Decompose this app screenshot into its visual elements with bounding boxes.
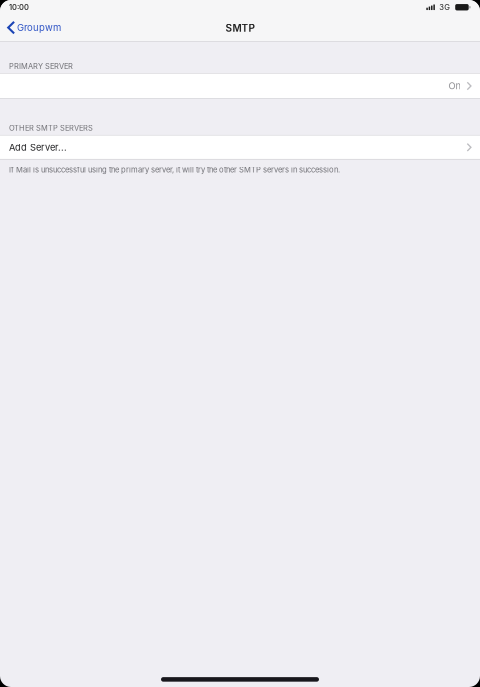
staticText: If Mail is unsuccessful using the primar…	[9, 165, 340, 174]
staticText: 10:00	[9, 3, 29, 12]
staticText: Add Server...	[9, 142, 67, 153]
button[interactable]: Add Server...	[0, 136, 480, 159]
button[interactable]: On	[0, 74, 480, 98]
staticText: OTHER SMTP SERVERS	[9, 123, 93, 132]
staticText: 3G	[439, 3, 450, 12]
button[interactable]: Groupwm	[0, 14, 67, 38]
staticText: On	[448, 80, 460, 91]
staticText: PRIMARY SERVER	[9, 62, 73, 71]
staticText: SMTP	[225, 22, 254, 34]
staticText: Groupwm	[17, 22, 61, 33]
